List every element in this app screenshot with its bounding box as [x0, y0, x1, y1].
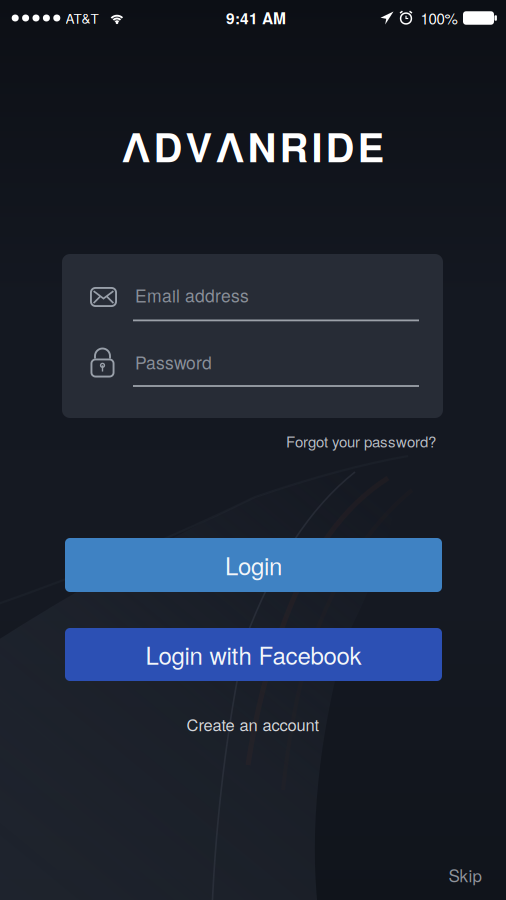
staticText: Login with Facebook [145, 637, 361, 672]
button[interactable]: Create an account [186, 712, 319, 736]
button[interactable]: Login [65, 538, 442, 592]
staticText: Password [135, 349, 212, 375]
button[interactable]: Password [89, 345, 419, 389]
staticText: 9:41 AM [226, 7, 286, 29]
staticText: Λ D V Λ N R I D E [121, 117, 384, 175]
staticText: Skip [448, 863, 481, 887]
button[interactable]: Email address [89, 282, 419, 326]
staticText: AT&T [65, 8, 98, 28]
button[interactable]: Forgot your password? [286, 430, 436, 452]
staticText: 100% [420, 7, 457, 29]
staticText: Create an account [186, 712, 319, 736]
button[interactable]: Login with Facebook [65, 628, 442, 681]
staticText: Forgot your password? [286, 430, 436, 452]
staticText: Login [225, 548, 282, 582]
staticText: Email address [135, 282, 249, 308]
button[interactable]: Skip [448, 863, 481, 887]
